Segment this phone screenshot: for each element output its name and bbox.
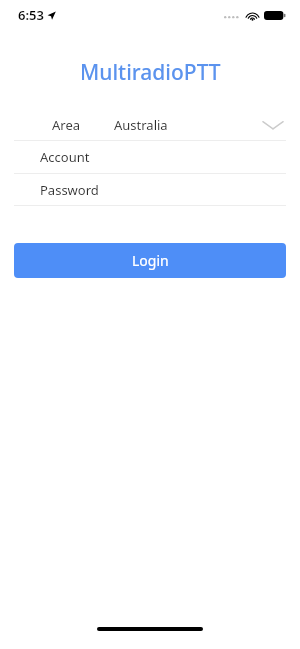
staticText: Account: [40, 148, 90, 166]
staticText: Password: [40, 181, 99, 199]
staticText: Login: [132, 251, 169, 270]
button[interactable]: Account: [0, 141, 300, 173]
staticText: 6:53: [18, 6, 44, 24]
staticText: MultiradioPTT: [80, 58, 221, 87]
button[interactable]: Password: [0, 174, 300, 205]
staticText: Australia: [114, 116, 168, 134]
staticText: Area: [52, 116, 81, 134]
other: Select area: [260, 112, 286, 138]
button[interactable]: Login: [14, 243, 286, 278]
button[interactable]: Area: [0, 109, 300, 140]
